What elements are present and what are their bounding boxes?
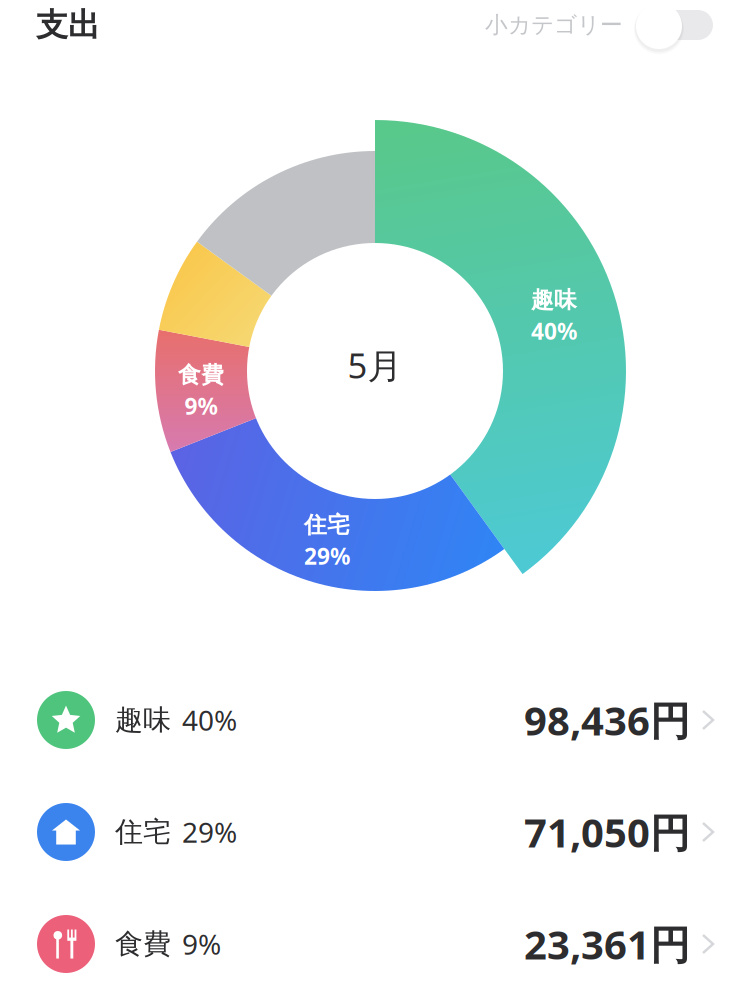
button[interactable]: 住宅 [0,776,750,888]
staticText: 小カテゴリー [485,11,623,39]
staticText: 40% [531,316,577,346]
staticText: 趣味 [531,286,577,314]
staticText: 5月 [347,342,402,388]
button[interactable]: 趣味 [0,664,750,776]
staticText: 住宅 [115,815,171,849]
staticText: 40% [182,701,237,739]
staticText: 支出 [36,5,100,45]
staticText: 71,050円 [524,805,690,858]
staticText: 23,361円 [524,917,690,970]
staticText: 食費 [178,361,224,389]
button[interactable]: 食費 [0,888,750,985]
staticText: 住宅 [304,511,350,539]
button[interactable]: Show subcategories [636,0,713,56]
staticText: 9% [184,391,217,421]
staticText: 29% [182,813,237,851]
staticText: 食費 [115,927,171,961]
staticText: 98,436円 [524,693,690,746]
staticText: 趣味 [115,703,171,737]
staticText: 29% [304,541,350,571]
staticText: 9% [182,925,221,963]
